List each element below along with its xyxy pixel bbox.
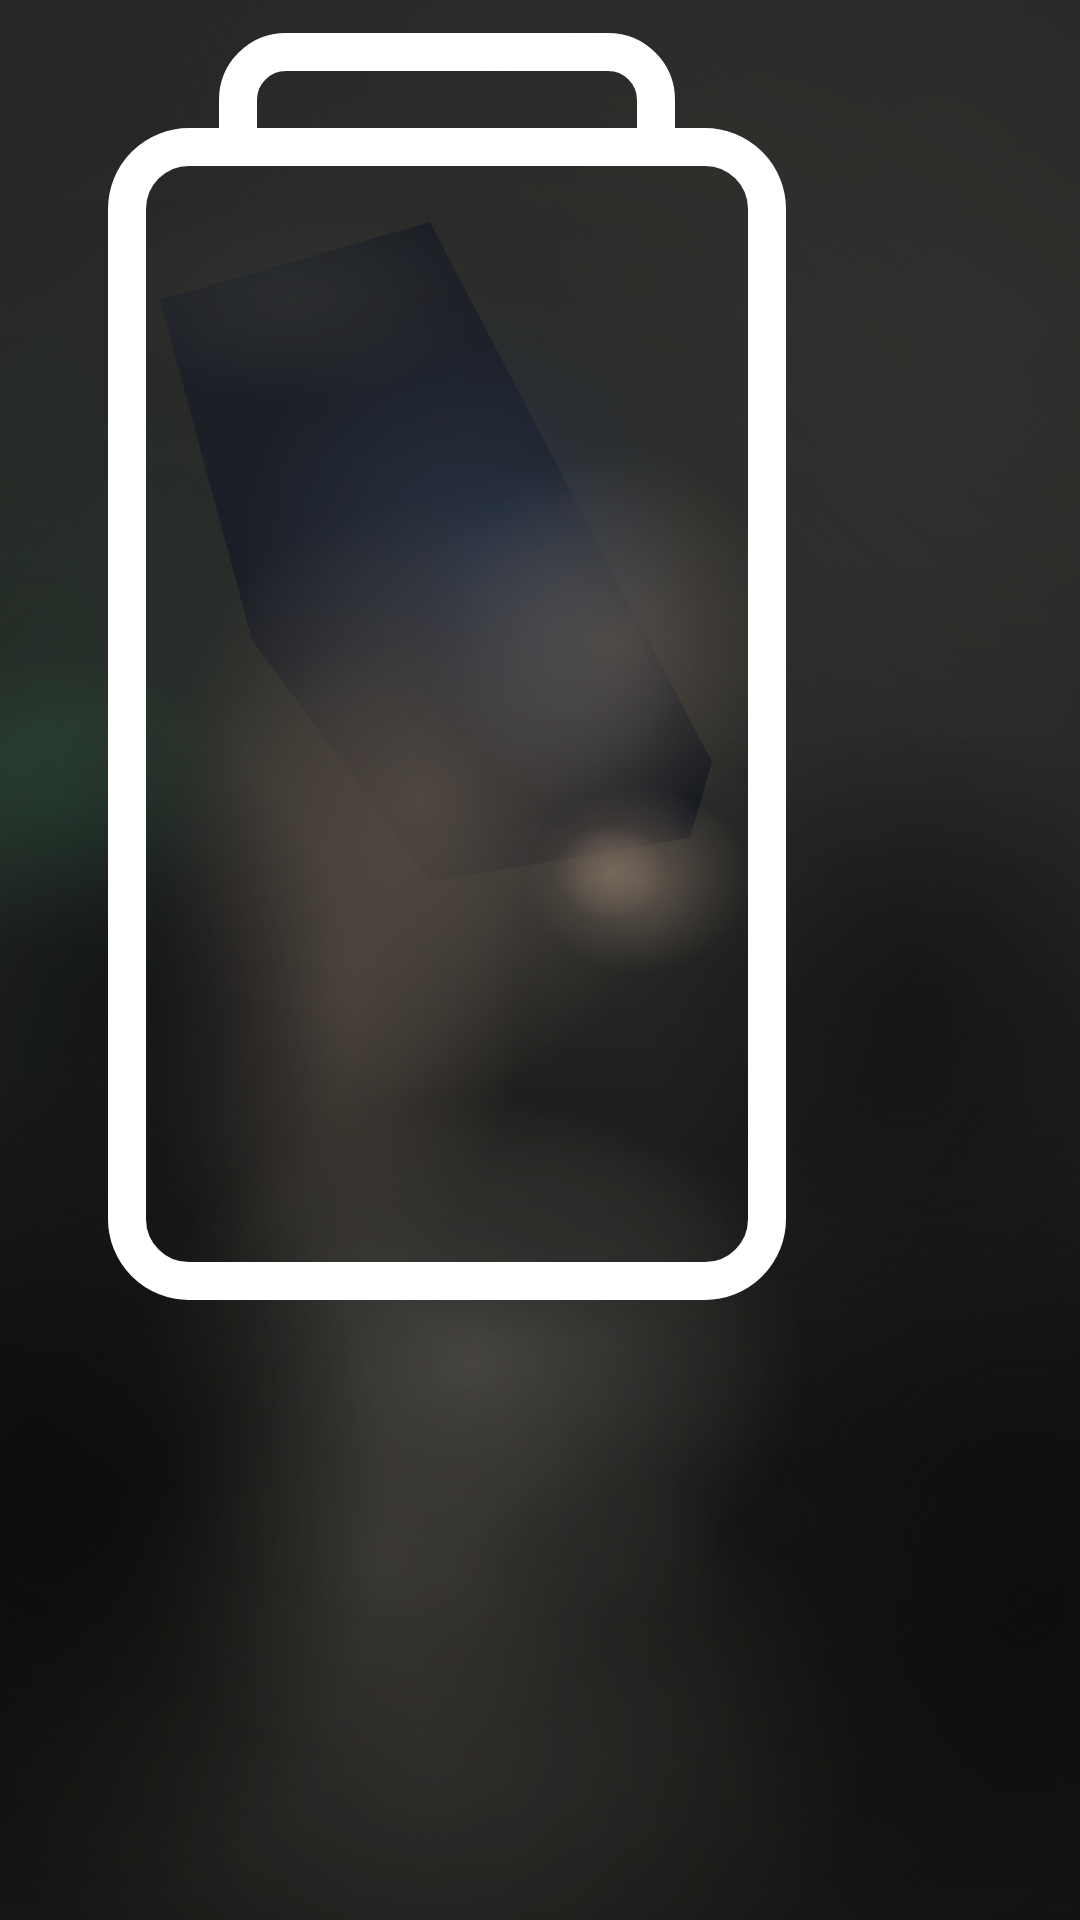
button[interactable]: Battery charging screen (0, 0, 1080, 1920)
